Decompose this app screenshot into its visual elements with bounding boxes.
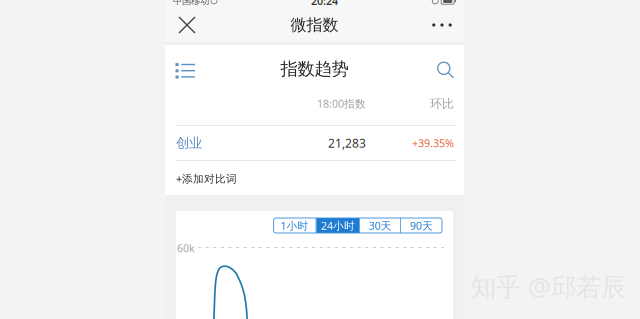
staticText: 环比 (430, 96, 454, 111)
staticText: 24小时 (321, 218, 355, 233)
staticText: 90天 (410, 218, 433, 233)
button[interactable]: 90天 (401, 218, 442, 233)
button[interactable]: Close (165, 8, 209, 42)
button[interactable]: Keyword list (176, 50, 214, 88)
staticText: 18:00指数 (317, 96, 366, 111)
staticText: 60k (177, 241, 195, 255)
staticText: 微指数 (290, 15, 338, 35)
button[interactable]: More options (420, 8, 464, 42)
button[interactable]: 30天 (360, 218, 400, 233)
button[interactable]: 1小时 (274, 218, 316, 233)
staticText: 知乎 @邱若辰 (471, 269, 626, 303)
button[interactable]: +添加对比词 (165, 161, 464, 196)
staticText: +添加对比词 (176, 171, 237, 186)
button[interactable]: Search (416, 50, 454, 88)
staticText: 1小时 (281, 218, 309, 233)
staticText: 中国移动 (173, 0, 209, 7)
button[interactable]: 24小时 (316, 218, 359, 233)
staticText: +39.35% (412, 136, 454, 150)
staticText: 20:24 (311, 0, 338, 8)
button[interactable]: 创业 (165, 126, 464, 160)
staticText: 21,283 (328, 135, 366, 151)
staticText: 指数趋势 (280, 58, 348, 80)
staticText: 30天 (369, 218, 392, 233)
staticText: 创业 (176, 135, 202, 151)
